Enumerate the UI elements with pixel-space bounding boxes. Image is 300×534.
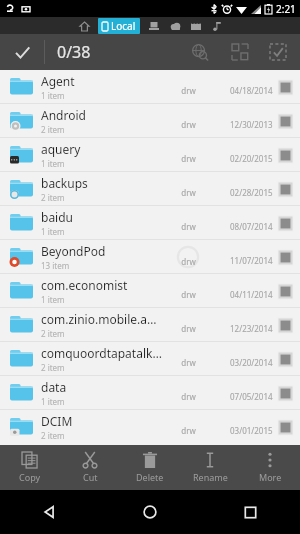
staticText: DCIM — [41, 413, 73, 429]
staticText: 13 item — [41, 260, 70, 271]
staticText: 2 item — [41, 328, 65, 339]
button[interactable]: Search — [180, 34, 220, 70]
staticText: Rename — [193, 471, 228, 483]
staticText: drw — [181, 85, 196, 96]
staticText: 2 item — [41, 124, 65, 135]
button[interactable]: Cut — [60, 445, 120, 490]
staticText: 04/18/2014 — [230, 85, 273, 96]
staticText: drw — [181, 256, 196, 267]
staticText: drw — [181, 221, 196, 232]
button[interactable]: DCIM — [0, 410, 300, 443]
staticText: Local — [111, 19, 136, 33]
staticText: drw — [181, 187, 196, 198]
button[interactable]: Select data — [276, 384, 294, 402]
button[interactable]: Select com.zinio.mobile.android.reader — [276, 316, 294, 334]
staticText: BeyondPod — [41, 243, 106, 259]
staticText: 12/30/2013 — [230, 119, 273, 130]
button[interactable]: Select baidu — [276, 214, 294, 232]
button[interactable]: Select DCIM — [276, 418, 294, 436]
staticText: 2 item — [41, 362, 65, 373]
staticText: comquoordtapatalkacfactivity — [41, 345, 163, 361]
button[interactable]: Select com.economist — [276, 282, 294, 300]
staticText: drw — [181, 357, 196, 368]
button[interactable]: com.economist — [0, 274, 300, 307]
staticText: drw — [181, 289, 196, 300]
staticText: 02/20/2015 — [230, 153, 273, 164]
staticText: 2:21 — [276, 2, 296, 16]
staticText: com.zinio.mobile.android.reader — [41, 311, 163, 327]
staticText: Copy — [19, 471, 41, 483]
button[interactable]: 0/38 — [45, 34, 180, 70]
button[interactable]: Select comquoordtapatalkacfactivity — [276, 350, 294, 368]
button[interactable]: Delete — [120, 445, 180, 490]
button[interactable]: aquery — [0, 138, 300, 171]
staticText: 2 item — [41, 192, 65, 203]
button[interactable]: Back — [0, 490, 100, 534]
button[interactable]: Computer — [147, 19, 161, 33]
button[interactable]: data — [0, 376, 300, 409]
button[interactable]: backups — [0, 172, 300, 205]
button[interactable]: BeyondPod — [0, 240, 300, 273]
button[interactable]: Local — [98, 18, 140, 34]
staticText: 2 item — [41, 430, 65, 441]
staticText: backups — [41, 175, 88, 191]
button[interactable]: Home — [77, 19, 91, 33]
staticText: com.economist — [41, 277, 128, 293]
button[interactable]: Select all — [260, 34, 296, 70]
staticText: Cut — [83, 471, 98, 483]
button[interactable]: Video — [189, 19, 203, 33]
button[interactable]: View mode — [220, 34, 260, 70]
staticText: 08/07/2014 — [230, 221, 273, 232]
button[interactable]: Select backups — [276, 180, 294, 198]
staticText: 1 item — [41, 226, 65, 237]
button[interactable]: baidu — [0, 206, 300, 239]
staticText: drw — [181, 425, 196, 436]
button[interactable]: Select Android — [276, 112, 294, 130]
staticText: 12/23/2014 — [230, 323, 273, 334]
staticText: drw — [181, 119, 196, 130]
button[interactable]: Android — [0, 104, 300, 137]
staticText: drw — [181, 323, 196, 334]
staticText: aquery — [41, 141, 81, 157]
staticText: 1 item — [41, 90, 65, 101]
staticText: 02/28/2015 — [230, 187, 273, 198]
button[interactable]: comquoordtapatalkacfactivity — [0, 342, 300, 375]
staticText: More — [259, 471, 282, 483]
staticText: 1 item — [41, 396, 65, 407]
button[interactable]: Copy — [0, 445, 60, 490]
button[interactable]: Select Agent — [276, 78, 294, 96]
button[interactable]: Cloud — [168, 19, 182, 33]
button[interactable]: com.zinio.mobile.android.reader — [0, 308, 300, 341]
staticText: data — [41, 379, 67, 395]
staticText: 1 item — [41, 158, 65, 169]
button[interactable]: Confirm — [0, 34, 44, 70]
staticText: baidu — [41, 209, 74, 225]
button[interactable]: Home — [100, 490, 200, 534]
button[interactable]: Select aquery — [276, 146, 294, 164]
button[interactable]: Music — [210, 19, 224, 33]
staticText: 11/07/2014 — [230, 255, 273, 266]
staticText: 04/11/2014 — [230, 289, 273, 300]
button[interactable]: Select BeyondPod — [276, 248, 294, 266]
staticText: Agent — [41, 73, 75, 89]
button[interactable]: Recents — [200, 490, 300, 534]
button[interactable]: Agent — [0, 70, 300, 103]
staticText: 1 item — [41, 294, 65, 305]
staticText: 07/05/2014 — [230, 391, 273, 402]
staticText: drw — [181, 391, 196, 402]
button[interactable]: Rename — [180, 445, 240, 490]
staticText: drw — [181, 153, 196, 164]
staticText: Android — [41, 107, 86, 123]
staticText: 03/01/2015 — [230, 425, 273, 436]
staticText: 0/38 — [57, 41, 91, 63]
staticText: 03/20/2014 — [230, 357, 273, 368]
button[interactable]: More — [240, 445, 300, 490]
staticText: Delete — [136, 471, 164, 483]
